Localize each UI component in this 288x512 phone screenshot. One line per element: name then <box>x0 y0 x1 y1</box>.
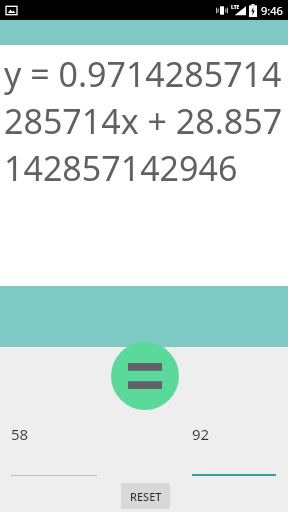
button[interactable]: 92 <box>192 424 276 476</box>
staticText: RESET <box>130 489 162 504</box>
staticText: 58 <box>11 424 29 444</box>
staticText: y = 0.9714285714285714x + 28.85714285714… <box>4 51 286 191</box>
button[interactable]: RESET <box>121 483 170 509</box>
staticText: 9:46 <box>261 3 283 18</box>
button[interactable]: Calculate <box>111 342 179 410</box>
staticText: LTE <box>231 4 240 11</box>
button[interactable]: 58 <box>11 424 97 476</box>
staticText: 92 <box>192 424 210 444</box>
